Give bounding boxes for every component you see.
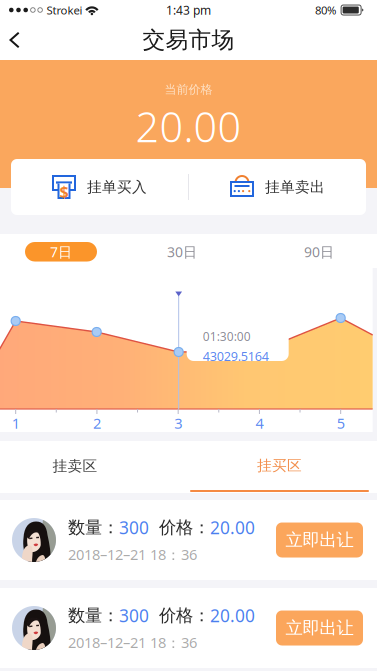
staticText: 数量： <box>68 517 119 538</box>
button[interactable]: 挂单卖出 <box>189 159 366 215</box>
button[interactable]: $ <box>11 159 188 215</box>
staticText: 5 <box>337 413 345 433</box>
staticText: 立即出让 <box>285 529 353 551</box>
staticText: 90日 <box>304 242 334 261</box>
staticText: 挂单卖出 <box>265 178 325 196</box>
button[interactable]: 7日 <box>0 234 97 261</box>
button[interactable]: Back <box>0 21 37 59</box>
staticText: 3 <box>174 413 182 433</box>
staticText: 80% <box>315 2 336 18</box>
staticText: 数量： <box>68 605 119 626</box>
staticText: 20.00 <box>135 98 241 154</box>
staticText: 2 <box>93 413 101 433</box>
staticText: 7日 <box>50 242 72 261</box>
staticText: 20.00 <box>210 604 255 627</box>
staticText: 4 <box>255 413 263 433</box>
staticText: 价格： <box>149 517 210 538</box>
staticText: 当前价格 <box>164 82 212 97</box>
staticText: 1:43 pm <box>166 2 211 18</box>
staticText: 01:30:00 <box>203 328 251 344</box>
staticText: 立即出让 <box>285 617 353 639</box>
staticText: 挂单买入 <box>87 178 147 196</box>
staticText: 交易市场 <box>142 26 234 54</box>
staticText: 43029.5164 <box>203 347 269 365</box>
button[interactable]: 挂卖区 <box>0 441 150 491</box>
staticText: 20.00 <box>210 516 255 539</box>
staticText: 挂卖区 <box>52 457 97 475</box>
button[interactable]: 立即出让 <box>276 522 363 557</box>
button[interactable]: 挂买区 <box>0 441 369 492</box>
staticText: 价格： <box>149 605 210 626</box>
button[interactable]: 30日 <box>0 234 207 261</box>
button[interactable]: 立即出让 <box>276 610 363 645</box>
staticText: 300 <box>119 604 149 627</box>
staticText: 挂买区 <box>257 456 302 475</box>
staticText: $ <box>59 181 68 202</box>
staticText: 2018–12–21 18：36 <box>68 544 197 564</box>
button[interactable]: 90日 <box>0 234 344 261</box>
staticText: 2018–12–21 18：36 <box>68 632 197 652</box>
staticText: Strokei <box>46 2 82 18</box>
staticText: 30日 <box>167 242 197 261</box>
staticText: 300 <box>119 516 149 539</box>
staticText: 1 <box>12 413 20 433</box>
